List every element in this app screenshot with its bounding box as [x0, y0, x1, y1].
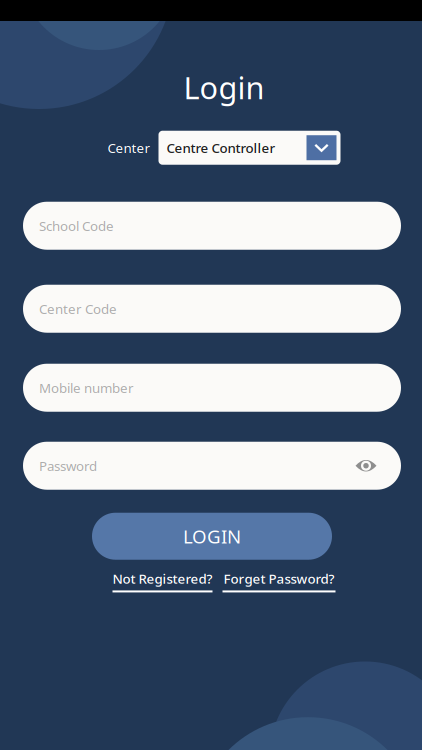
staticText: Center	[107, 139, 150, 157]
staticText: Login	[183, 67, 264, 108]
staticText: Mobile number	[39, 379, 134, 397]
staticText: School Code	[39, 217, 114, 235]
button[interactable]: Centre Controller	[158, 131, 340, 165]
button[interactable]: Password	[23, 442, 401, 490]
button[interactable]: Not Registered?	[112, 570, 212, 592]
staticText: LOGIN	[183, 524, 241, 549]
button[interactable]: Mobile number	[23, 364, 401, 412]
staticText: Center Code	[39, 300, 117, 318]
staticText: Password	[39, 457, 97, 475]
button[interactable]: LOGIN	[92, 513, 332, 560]
staticText: Not Registered?	[112, 570, 212, 587]
button[interactable]: Center Code	[23, 285, 401, 333]
button[interactable]: School Code	[23, 202, 401, 250]
staticText: Centre Controller	[166, 139, 275, 157]
button[interactable]: Forget Password?	[222, 570, 335, 592]
staticText: Forget Password?	[223, 570, 334, 587]
